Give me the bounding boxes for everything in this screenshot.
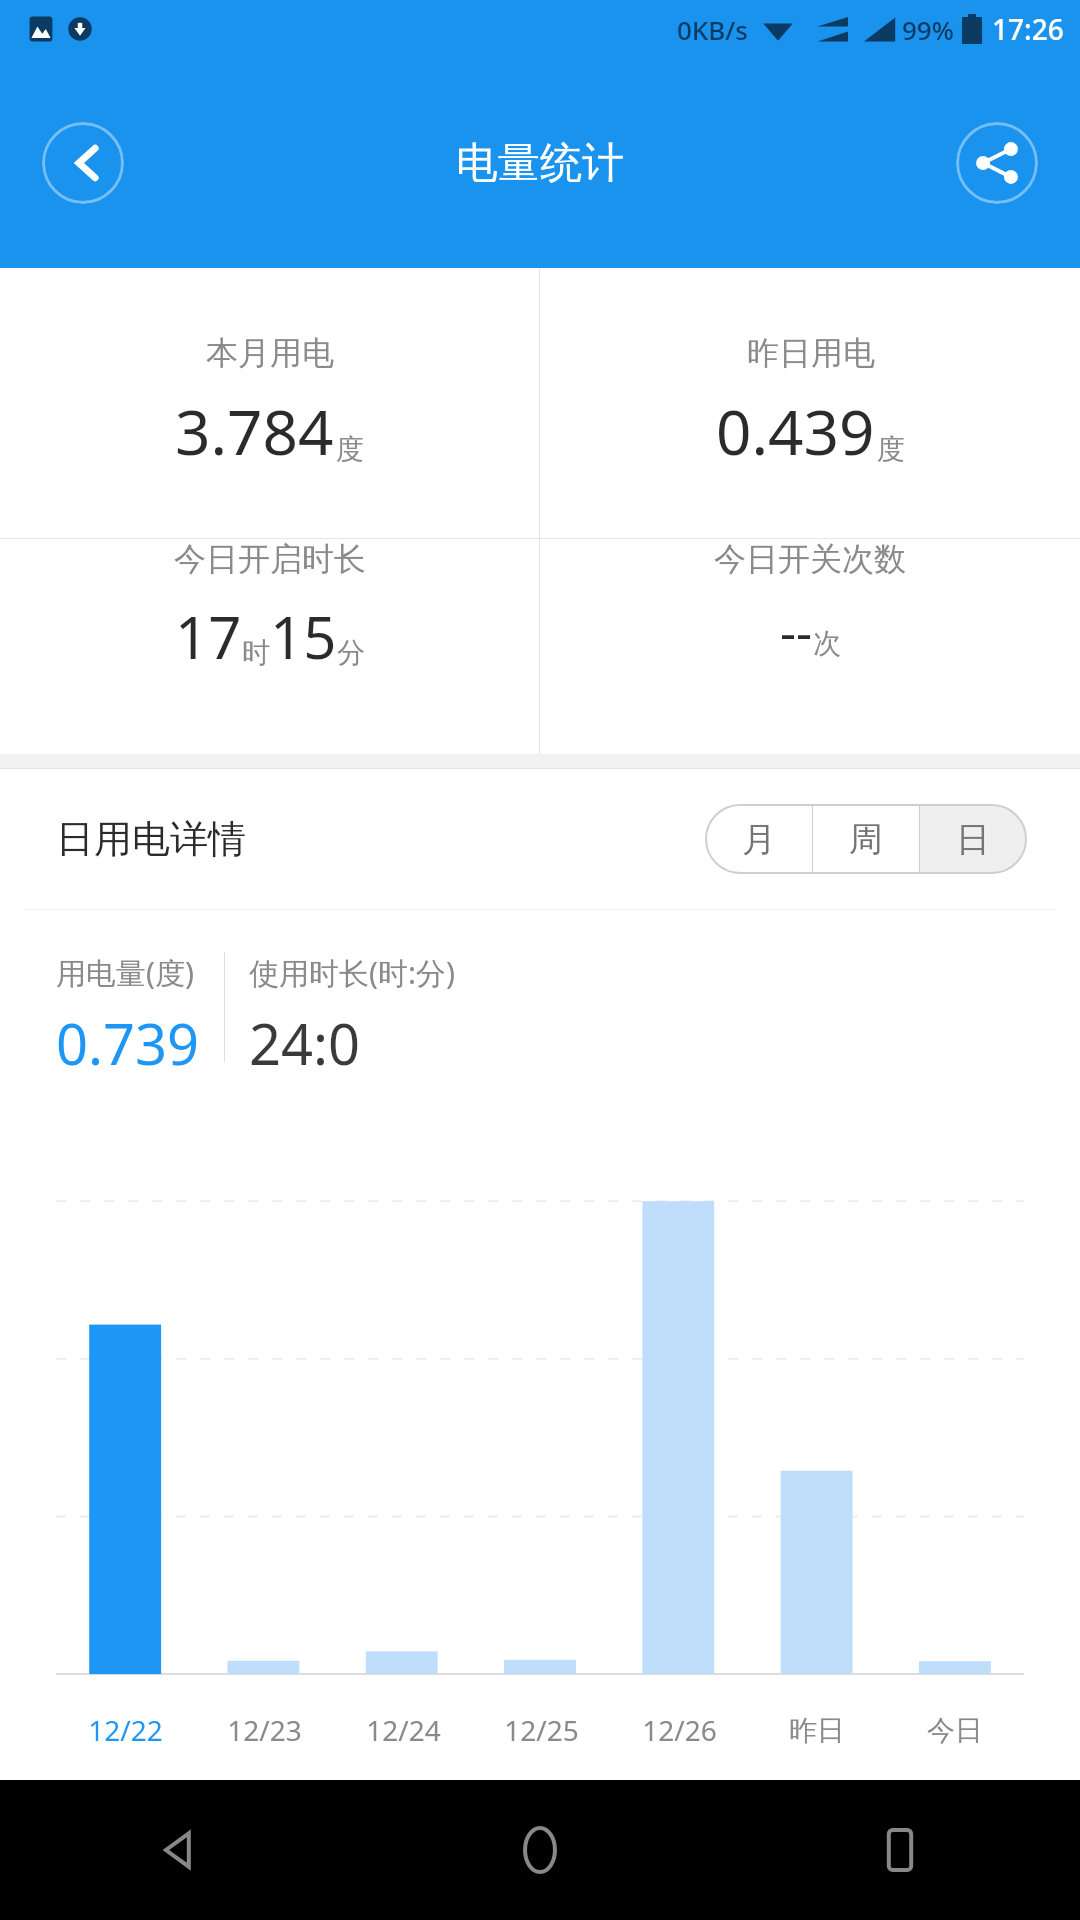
- button[interactable]: Home: [500, 1810, 580, 1890]
- button[interactable]: 月: [706, 805, 812, 873]
- staticText: 今日开关次数: [714, 539, 906, 579]
- staticText: 次: [813, 626, 841, 661]
- staticText: 12/26: [642, 1711, 717, 1749]
- staticText: 分: [337, 635, 365, 670]
- staticText: 今日: [927, 1713, 983, 1748]
- staticText: 日: [956, 818, 990, 861]
- staticText: 12/23: [227, 1711, 302, 1749]
- staticText: 24:0: [249, 1005, 361, 1081]
- staticText: 0KB/s: [677, 12, 748, 47]
- staticText: 0.439: [716, 389, 875, 473]
- staticText: 99%: [902, 12, 954, 47]
- staticText: 周: [849, 818, 883, 861]
- button[interactable]: Recents: [860, 1810, 940, 1890]
- staticText: 17:26: [992, 10, 1064, 48]
- staticText: 17: [175, 597, 242, 676]
- staticText: 本月用电: [206, 333, 334, 373]
- button[interactable]: Share: [956, 122, 1038, 204]
- button[interactable]: Back: [140, 1810, 220, 1890]
- staticText: 12/25: [504, 1711, 579, 1749]
- staticText: 12/22: [88, 1711, 163, 1749]
- staticText: --: [780, 597, 813, 665]
- staticText: 用电量(度): [56, 952, 194, 993]
- staticText: 昨日用电: [747, 333, 875, 373]
- staticText: 度: [336, 432, 364, 467]
- staticText: 0.739: [56, 1005, 200, 1081]
- staticText: 昨日: [789, 1713, 845, 1748]
- staticText: 月: [742, 818, 776, 861]
- staticText: 3.784: [175, 389, 334, 473]
- button[interactable]: 日: [920, 805, 1026, 873]
- staticText: 时: [242, 635, 270, 670]
- button[interactable]: Back: [42, 122, 124, 204]
- button[interactable]: 周: [813, 805, 919, 873]
- staticText: 15: [270, 597, 337, 676]
- staticText: 12/24: [366, 1711, 441, 1749]
- staticText: 今日开启时长: [174, 539, 366, 579]
- staticText: 使用时长(时:分): [249, 952, 456, 993]
- staticText: 电量统计: [456, 137, 624, 190]
- staticText: 度: [877, 432, 905, 467]
- staticText: 日用电详情: [56, 815, 246, 863]
